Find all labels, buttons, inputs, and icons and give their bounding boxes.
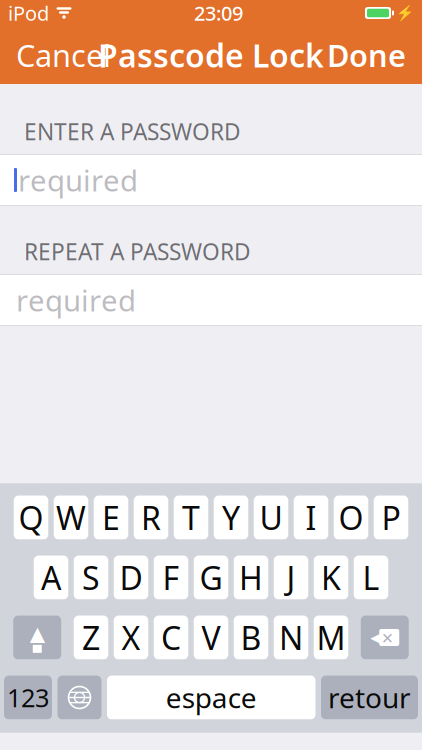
staticText: B — [240, 616, 261, 659]
button[interactable]: V — [194, 615, 228, 659]
button[interactable]: X — [114, 615, 148, 659]
staticText: Y — [222, 496, 240, 539]
staticText: REPEAT A PASSWORD — [24, 236, 251, 266]
button[interactable]: C — [154, 615, 188, 659]
button[interactable]: espace — [107, 675, 315, 719]
staticText: L — [362, 556, 379, 599]
staticText: F — [162, 556, 179, 599]
button[interactable]: Q — [14, 495, 48, 539]
staticText: Q — [18, 496, 43, 539]
staticText: U — [259, 496, 282, 539]
button[interactable]: A — [34, 555, 68, 599]
staticText: H — [239, 556, 263, 599]
staticText: N — [279, 616, 303, 659]
button[interactable]: T — [174, 495, 208, 539]
button[interactable]: K — [314, 555, 348, 599]
staticText: required — [18, 160, 138, 199]
button[interactable]: Y — [214, 495, 248, 539]
button[interactable]: retour — [321, 675, 418, 719]
staticText: W — [56, 496, 86, 539]
button[interactable]: B — [234, 615, 268, 659]
button[interactable]: J — [274, 555, 308, 599]
button[interactable]: S — [74, 555, 108, 599]
staticText: × — [382, 624, 393, 651]
button[interactable]: Delete — [361, 615, 409, 659]
staticText: required — [16, 280, 136, 319]
staticText: K — [321, 556, 341, 599]
staticText: I — [305, 496, 316, 539]
button[interactable]: Next keyboard — [57, 675, 101, 719]
staticText: E — [102, 496, 120, 539]
button[interactable]: P — [374, 495, 408, 539]
staticText: T — [182, 496, 200, 539]
staticText: J — [286, 556, 295, 599]
button[interactable]: G — [194, 555, 228, 599]
staticText: C — [161, 616, 181, 659]
staticText: ◀ — [370, 629, 381, 646]
button[interactable]: Done — [315, 25, 418, 85]
staticText: espace — [166, 679, 257, 716]
staticText: iPod — [8, 0, 49, 26]
staticText: V — [201, 616, 220, 659]
button[interactable]: W — [54, 495, 88, 539]
button[interactable]: N — [274, 615, 308, 659]
staticText: ENTER A PASSWORD — [24, 116, 241, 146]
staticText: G — [199, 556, 222, 599]
button[interactable]: E — [94, 495, 128, 539]
staticText: ▲ — [30, 622, 45, 645]
staticText: Passcode Lock — [98, 34, 324, 76]
button[interactable]: L — [354, 555, 388, 599]
staticText: M — [316, 616, 345, 659]
staticText: S — [82, 556, 100, 599]
button[interactable]: U — [254, 495, 288, 539]
button[interactable]: H — [234, 555, 268, 599]
staticText: ⚡ — [396, 5, 414, 21]
button[interactable]: Shift — [13, 615, 61, 659]
staticText: X — [121, 616, 140, 659]
staticText: O — [338, 496, 363, 539]
button[interactable]: M — [314, 615, 348, 659]
staticText: R — [141, 496, 161, 539]
staticText: 23:09 — [194, 0, 243, 26]
button[interactable]: F — [154, 555, 188, 599]
button[interactable]: I — [294, 495, 328, 539]
staticText: Done — [327, 35, 406, 75]
staticText: D — [119, 556, 142, 599]
staticText: A — [41, 556, 61, 599]
staticText: Z — [82, 616, 100, 659]
staticText: Cancel — [16, 35, 111, 75]
button[interactable]: D — [114, 555, 148, 599]
staticText: P — [381, 496, 400, 539]
button[interactable]: R — [134, 495, 168, 539]
staticText: 123 — [7, 681, 49, 714]
button[interactable]: Cancel — [4, 25, 123, 85]
button[interactable]: O — [334, 495, 368, 539]
staticText: retour — [328, 679, 411, 716]
button[interactable]: Z — [74, 615, 108, 659]
button[interactable]: 123 — [4, 675, 52, 719]
